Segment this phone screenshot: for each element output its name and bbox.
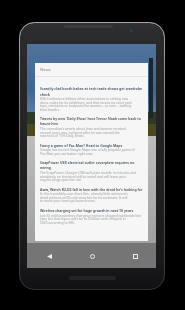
button[interactable]: Recent apps — [124, 245, 146, 267]
staticText: to make your heart go boom boom. — [40, 198, 96, 202]
staticText: Fancy a game of Pac-Man? Head to Google … — [40, 143, 123, 148]
staticText: SnapPower USB electrical outlet coverpla… — [40, 160, 135, 165]
staticText: 2025 according to IHS. — [40, 220, 75, 224]
button[interactable] — [37, 85, 146, 111]
staticText: check — [40, 92, 50, 97]
staticText: haunt him — [40, 121, 58, 126]
staticText: Wireless charging set for huge growth in… — [40, 208, 134, 213]
button[interactable] — [37, 186, 146, 203]
staticText: regular plugs open for use. — [40, 177, 83, 181]
button[interactable] — [37, 142, 146, 155]
staticText: Just 55 million wireless charging receiv… — [40, 213, 142, 217]
staticText: RSA Conference follows other association… — [40, 96, 129, 100]
staticText: The comedian's tweets about Jews and wom… — [40, 126, 126, 130]
staticText: their booths. — [40, 107, 60, 111]
staticText: several years ago, surfaced after he was… — [40, 130, 120, 134]
staticText: Scantily clad booth babes at tech trade … — [40, 86, 143, 91]
staticText: droid without an R2-unit searches for it… — [40, 195, 128, 199]
staticText: Aww, Watch R2-D2 fall in love with the d… — [40, 187, 143, 192]
staticText: absolutely no electrical skill to instal… — [40, 174, 127, 178]
staticText: wiring — [40, 165, 51, 170]
button[interactable] — [37, 159, 146, 182]
button[interactable]: Back — [38, 245, 60, 267]
staticText: The SnapPower Charger USB wall plate ins… — [40, 170, 136, 174]
staticText: News — [40, 67, 51, 73]
staticText: Tweets by new 'Daily Show' host Trevor N… — [40, 116, 141, 121]
button[interactable]: News — [35, 63, 148, 76]
staticText: new host of 'The Daily Show'. — [40, 133, 85, 137]
button[interactable] — [37, 207, 146, 224]
staticText: dress codes for its exhibitors, and that… — [40, 100, 133, 104]
button[interactable] — [37, 115, 146, 138]
staticText: Pac-Man you can batter right now. — [40, 151, 94, 155]
staticText: year, but that figure will rise to 2 bil… — [40, 216, 126, 220]
staticText: tops, miniskirts or bodysuits for women … — [40, 103, 132, 107]
staticText: In this incredibly cute short film, a lo… — [40, 191, 128, 195]
button[interactable]: Home — [81, 245, 103, 267]
staticText: Google has turned Google Maps into a ful… — [40, 147, 135, 151]
